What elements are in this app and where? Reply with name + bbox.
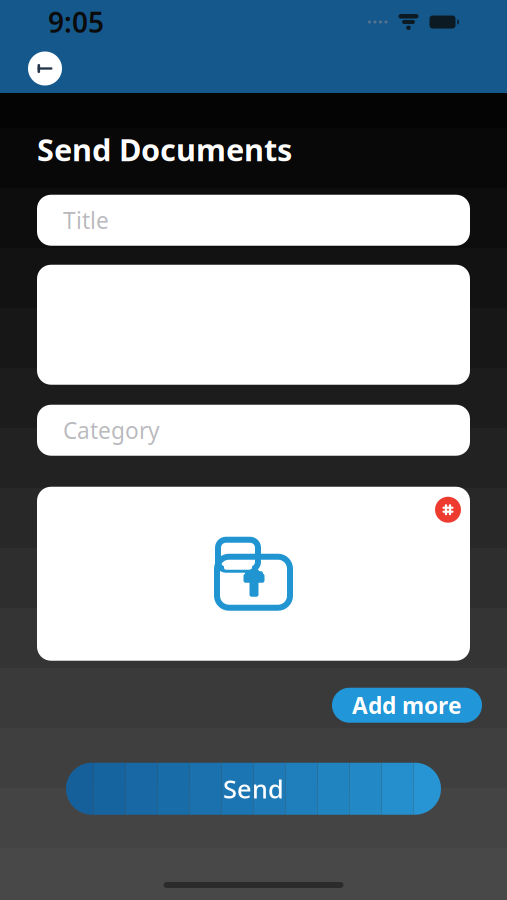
button[interactable]: Back	[23, 48, 67, 88]
staticText: Add more	[352, 690, 462, 720]
staticText: Title	[63, 205, 109, 235]
staticText: Send	[223, 772, 284, 805]
staticText: Category	[63, 415, 160, 445]
button[interactable]: Upload document	[37, 487, 470, 661]
button[interactable]: Send	[66, 763, 441, 815]
button[interactable]: Description	[37, 265, 470, 385]
button[interactable]: Remove document	[431, 493, 465, 527]
button[interactable]: Category	[37, 405, 470, 456]
button[interactable]: Title	[37, 195, 470, 246]
button[interactable]: Add more	[332, 688, 482, 723]
staticText: Send Documents	[37, 129, 292, 170]
staticText: 9:05	[48, 3, 104, 41]
